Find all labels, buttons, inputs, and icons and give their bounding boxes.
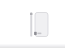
button[interactable]: Open card: [35, 12, 48, 36]
